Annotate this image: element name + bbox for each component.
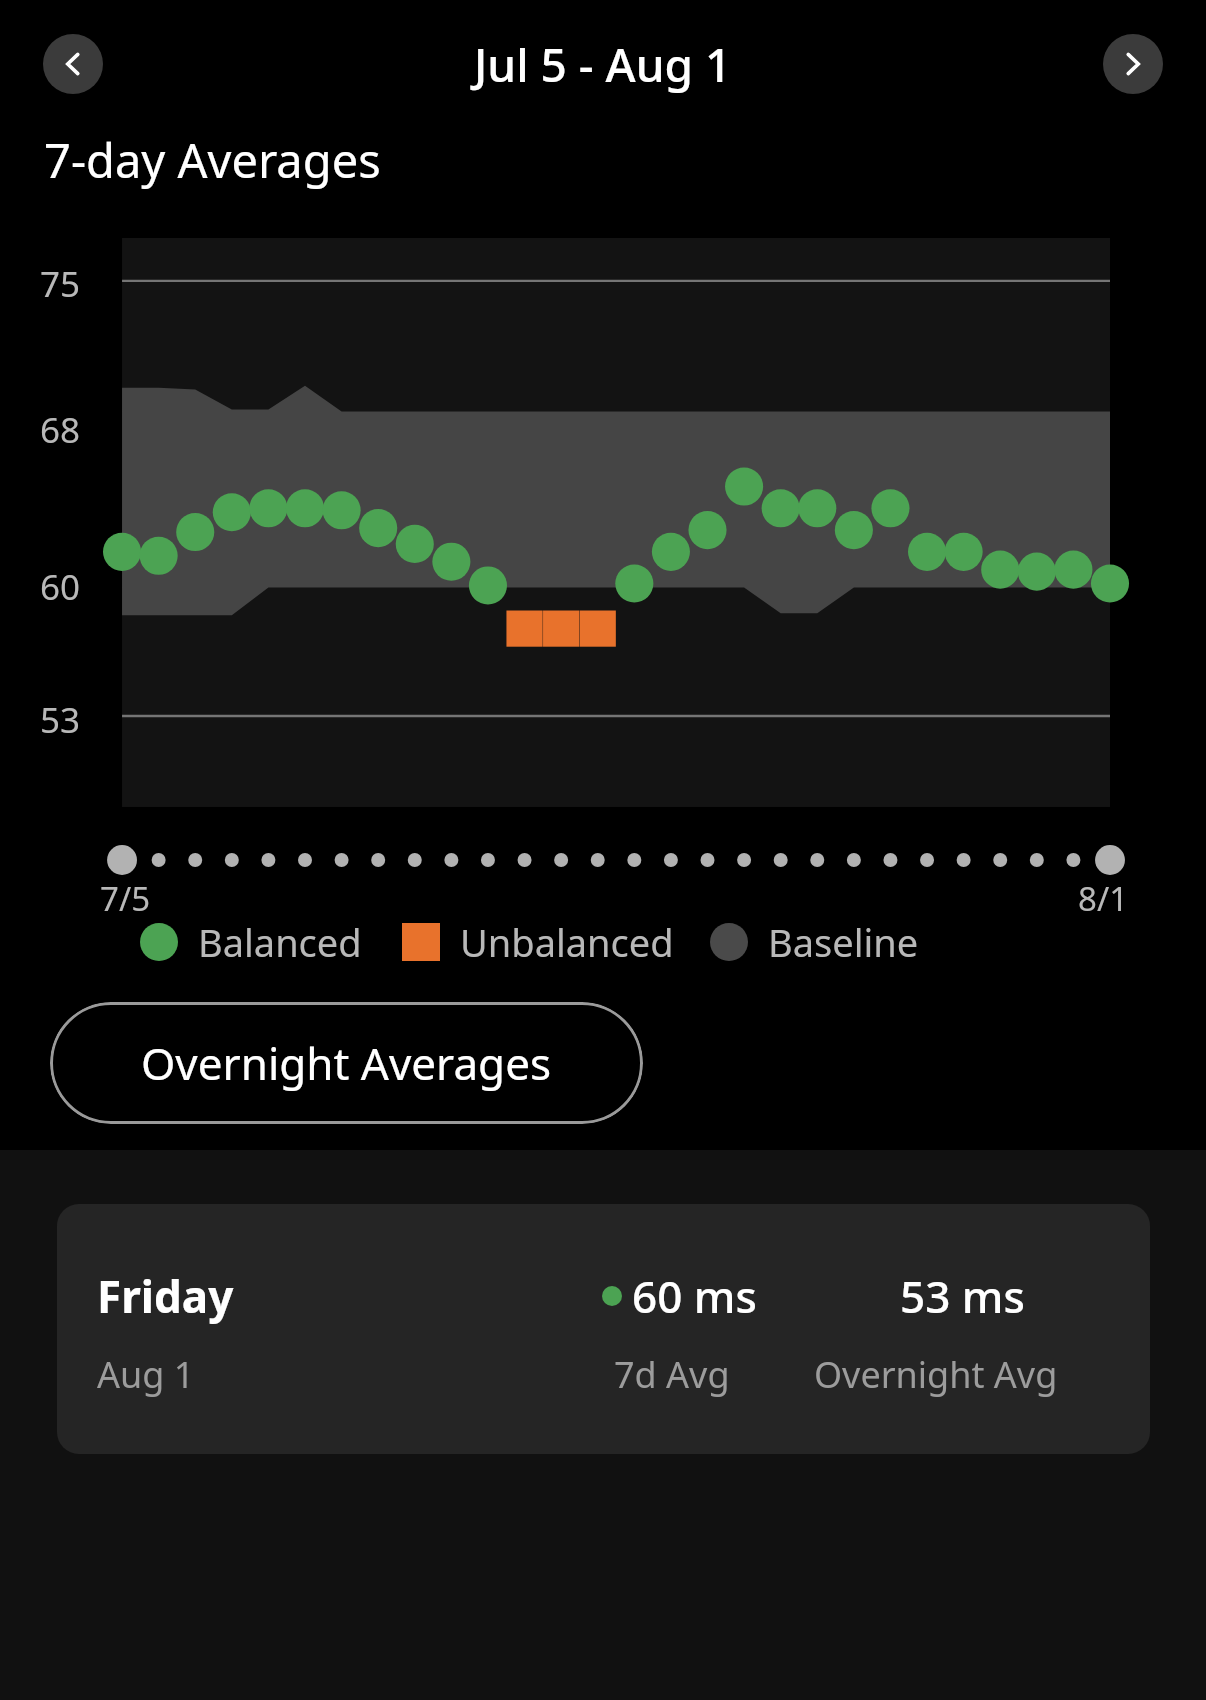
staticText: 60 ms xyxy=(632,1266,757,1326)
staticText: Baseline xyxy=(768,916,919,968)
staticText: 68 xyxy=(40,406,81,454)
staticText: 8/1 xyxy=(1078,876,1129,921)
staticText: 53 xyxy=(40,696,81,744)
staticText: 53 ms xyxy=(900,1266,1025,1326)
staticText: Unbalanced xyxy=(460,916,674,968)
staticText: Aug 1 xyxy=(97,1350,195,1399)
staticText: Friday xyxy=(97,1266,234,1326)
staticText: 75 xyxy=(40,260,81,308)
staticText: Jul 5 - Aug 1 xyxy=(474,33,732,96)
staticText: Overnight Avg xyxy=(814,1350,1058,1399)
staticText: 7d Avg xyxy=(614,1350,730,1399)
staticText: Balanced xyxy=(198,916,362,968)
button[interactable]: Overnight Averages xyxy=(50,1002,643,1124)
staticText: Overnight Averages xyxy=(141,1033,552,1093)
staticText: 7-day Averages xyxy=(44,128,381,192)
staticText: 60 xyxy=(40,563,81,611)
staticText: 7/5 xyxy=(100,876,151,921)
button[interactable]: Previous period xyxy=(43,34,103,94)
button[interactable]: Friday xyxy=(57,1204,1150,1454)
button[interactable]: Next period xyxy=(1103,34,1163,94)
